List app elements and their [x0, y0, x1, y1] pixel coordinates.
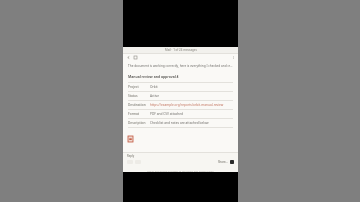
button[interactable]: Status	[128, 92, 233, 101]
button[interactable]: More options	[231, 55, 235, 59]
button[interactable]: Description	[128, 119, 233, 128]
staticText: Status	[128, 94, 150, 98]
button[interactable]: Archive	[133, 55, 137, 59]
staticText: Project	[128, 85, 150, 89]
staticText: Mail · 1 of 24 messages	[165, 48, 197, 52]
staticText: Active	[150, 94, 233, 98]
staticText: PDF and CSV attached	[150, 112, 233, 116]
staticText: Orbit	[150, 85, 233, 89]
button[interactable]: Format	[128, 110, 233, 119]
staticText: Checklist and notes are attached below	[150, 121, 233, 125]
staticText: Description	[128, 121, 150, 125]
staticText: Use of this service is subject to the Te…	[147, 169, 214, 172]
staticText: https://example.org/reports/orbit-manual…	[150, 103, 233, 107]
staticText: Reply	[127, 154, 135, 158]
button[interactable]: PDF attachment	[128, 136, 133, 142]
button[interactable]: Destination	[128, 101, 233, 110]
button[interactable]: Send	[230, 160, 234, 164]
button[interactable]: Share…	[218, 160, 234, 164]
staticText: Share…	[218, 160, 228, 164]
staticText: Manual review and approval 4	[128, 74, 179, 79]
staticText: The document is working correctly, here …	[128, 64, 233, 68]
staticText: Format	[128, 112, 150, 116]
button[interactable]: Project	[128, 83, 233, 92]
button[interactable]: Back	[126, 55, 130, 59]
staticText: Destination	[128, 103, 150, 107]
